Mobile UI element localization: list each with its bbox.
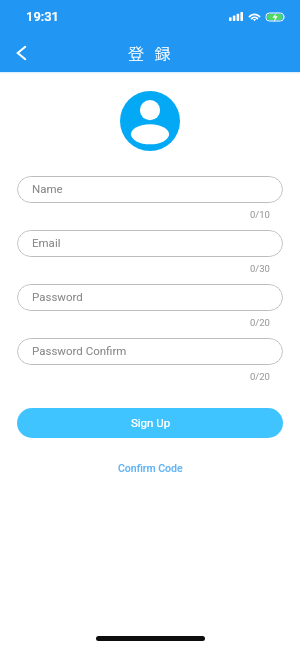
button[interactable]: Email (17, 230, 283, 257)
button[interactable]: Sign Up (17, 408, 283, 438)
button[interactable]: Password (17, 284, 283, 311)
button[interactable]: Password Confirm (17, 338, 283, 365)
button[interactable]: Back (0, 31, 40, 71)
staticText: 19:31 (26, 9, 59, 24)
staticText: Password Confirm (32, 344, 127, 357)
staticText: 0/10 (250, 209, 270, 220)
staticText: Sign Up (131, 416, 171, 429)
staticText: 0/20 (250, 371, 270, 382)
staticText: 0/30 (250, 263, 270, 274)
staticText: Email (32, 236, 61, 249)
staticText: Password (32, 290, 83, 303)
button[interactable]: Name (17, 176, 283, 203)
staticText: 登 録 (128, 41, 175, 64)
staticText: Name (32, 182, 63, 195)
staticText: 0/20 (250, 317, 270, 328)
button[interactable]: Confirm Code (110, 459, 191, 477)
